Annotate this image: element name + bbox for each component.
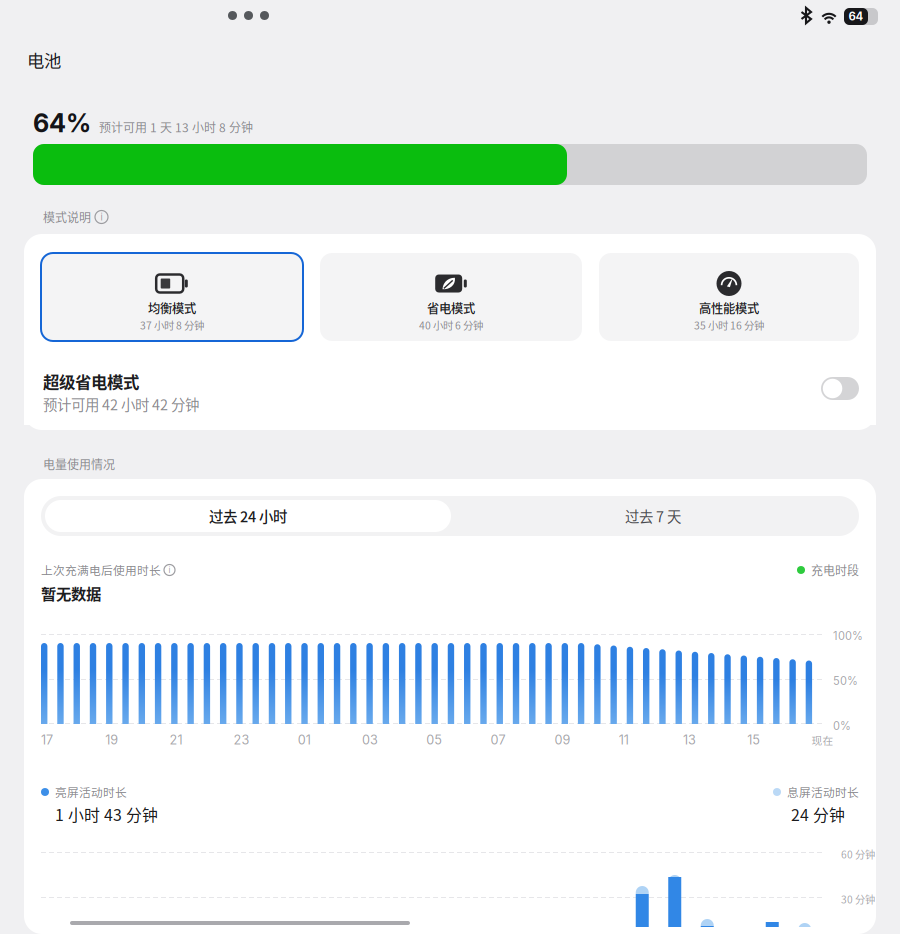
staticText: i (168, 565, 170, 575)
staticText: 省电模式 (427, 299, 475, 317)
staticText: 超级省电模式 (43, 369, 139, 393)
staticText: 模式说明 (43, 208, 91, 226)
staticText: 均衡模式 (148, 299, 196, 317)
button[interactable]: 高性能模式 (599, 253, 859, 341)
staticText: 21 (169, 732, 182, 748)
staticText: 60 分钟 (841, 847, 875, 861)
staticText: 现在 (811, 732, 833, 748)
staticText: i (100, 211, 102, 223)
staticText: 17 (41, 732, 53, 748)
staticText: 上次充满电后使用时长 (41, 561, 161, 578)
staticText: 高性能模式 (699, 299, 759, 317)
staticText: 01 (298, 732, 311, 748)
staticText: 64 (848, 10, 863, 23)
button[interactable]: 过去 24 小时 (45, 500, 451, 532)
staticText: 15 (747, 732, 760, 748)
staticText: 预计可用 42 小时 42 分钟 (43, 394, 199, 414)
staticText: 40 小时 6 分钟 (419, 317, 483, 333)
button[interactable]: 超级省电模式 (24, 365, 876, 425)
staticText: 过去 24 小时 (209, 506, 287, 526)
staticText: 24 分钟 (791, 802, 845, 825)
staticText: 64% (33, 108, 91, 138)
staticText: 过去 7 天 (625, 506, 681, 526)
staticText: 09 (555, 732, 571, 748)
staticText: 0% (833, 719, 851, 733)
staticText: 37 小时 8 分钟 (140, 317, 204, 333)
button[interactable]: 超级省电模式 (821, 377, 859, 400)
staticText: 11 (619, 732, 629, 748)
staticText: 30 分钟 (841, 892, 875, 906)
staticText: 50% (833, 674, 858, 688)
staticText: 03 (362, 732, 378, 748)
staticText: 电池 (27, 47, 61, 73)
button[interactable]: 均衡模式 (41, 253, 303, 341)
staticText: 预计可用 1 天 13 小时 8 分钟 (99, 118, 253, 136)
staticText: 13 (683, 732, 696, 748)
staticText: 23 (234, 732, 250, 748)
staticText: 35 小时 16 分钟 (694, 317, 764, 333)
button[interactable]: 省电模式 (320, 253, 582, 341)
staticText: 19 (105, 732, 118, 748)
staticText: 1 小时 43 分钟 (55, 802, 158, 825)
staticText: 电量使用情况 (43, 455, 115, 473)
staticText: 充电时段 (811, 561, 859, 579)
staticText: 100% (833, 629, 863, 643)
button[interactable]: 过去 7 天 (451, 500, 855, 532)
staticText: 息屏活动时长 (787, 783, 859, 800)
staticText: 05 (426, 732, 442, 748)
staticText: 亮屏活动时长 (55, 783, 127, 800)
staticText: 暂无数据 (41, 582, 101, 604)
staticText: 07 (490, 732, 505, 748)
